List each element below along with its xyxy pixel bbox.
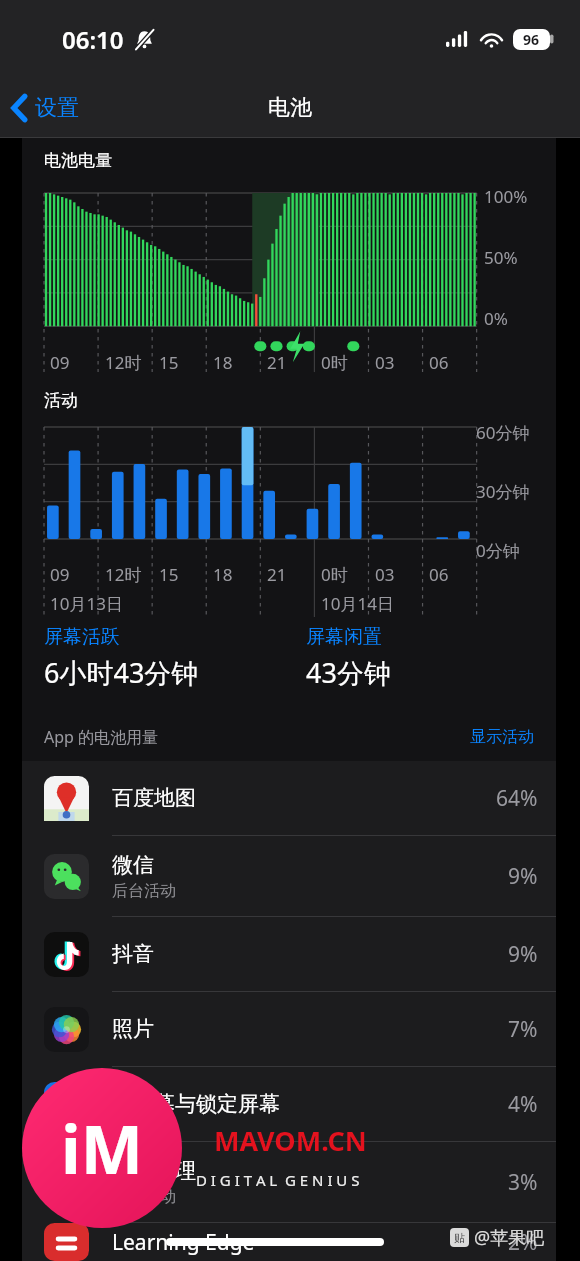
staticText: 06	[429, 351, 449, 374]
staticText: MAVOM.CN	[214, 1122, 367, 1159]
staticText: 15	[159, 563, 179, 586]
button[interactable]: 微信	[22, 836, 556, 916]
staticText: 2%	[508, 1228, 538, 1257]
staticText: 4%	[508, 1090, 538, 1119]
staticText: 0时	[321, 563, 348, 586]
staticText: 09	[50, 563, 70, 586]
staticText: Learning Edge	[112, 1228, 255, 1257]
staticText: 屏幕活跃	[44, 625, 120, 649]
staticText: 显示活动	[470, 727, 534, 747]
staticText: 0%	[484, 307, 508, 330]
staticText: 12时	[105, 563, 142, 586]
staticText: 30分钟	[476, 480, 530, 503]
staticText: @苹果吧	[474, 1225, 545, 1250]
staticText: 百度地图	[112, 785, 196, 811]
staticText: 64%	[496, 784, 538, 813]
staticText: 21	[267, 563, 287, 586]
staticText: 03	[375, 563, 395, 586]
staticText: 43分钟	[306, 654, 391, 691]
staticText: 后台活动	[112, 881, 176, 901]
staticText: 0分钟	[476, 539, 520, 562]
staticText: 屏幕闲置	[306, 625, 382, 649]
staticText: 设置	[35, 94, 79, 122]
staticText: 06:10	[62, 23, 124, 56]
staticText: 60分钟	[476, 421, 530, 444]
staticText: 3%	[508, 1168, 538, 1197]
button[interactable]: 照片	[22, 992, 556, 1066]
staticText: 电池	[268, 94, 312, 122]
staticText: 96	[523, 30, 540, 49]
staticText: 系统管理	[112, 1158, 196, 1184]
button[interactable]: 主屏幕与锁定屏幕	[22, 1067, 556, 1141]
staticText: 18	[213, 563, 233, 586]
staticText: 09	[50, 351, 70, 374]
staticText: App 的电池用量	[44, 726, 159, 748]
staticText: 后台活动	[112, 1187, 176, 1207]
staticText: 电池电量	[44, 150, 112, 171]
button[interactable]: Learning Edge	[22, 1223, 556, 1261]
staticText: 9%	[508, 940, 538, 969]
staticText: 主屏幕与锁定屏幕	[112, 1091, 280, 1117]
staticText: 10月14日	[321, 592, 394, 615]
staticText: 9%	[508, 862, 538, 891]
staticText: 活动	[44, 390, 78, 411]
staticText: 21	[267, 351, 287, 374]
button[interactable]: 抖音	[22, 917, 556, 991]
staticText: 06	[429, 563, 449, 586]
staticText: 50%	[484, 246, 518, 269]
staticText: iM	[61, 1103, 143, 1193]
staticText: 7%	[508, 1015, 538, 1044]
button[interactable]: 百度地图	[22, 761, 556, 835]
staticText: 微信	[112, 852, 154, 878]
staticText: 0时	[321, 351, 348, 374]
staticText: 18	[213, 351, 233, 374]
staticText: 照片	[112, 1016, 154, 1042]
staticText: 03	[375, 351, 395, 374]
staticText: 12时	[105, 351, 142, 374]
staticText: 10月13日	[50, 592, 123, 615]
button[interactable]: 显示活动	[466, 723, 538, 751]
staticText: 15	[159, 351, 179, 374]
button[interactable]: 系统管理	[22, 1142, 556, 1222]
staticText: 抖音	[112, 941, 154, 967]
staticText: 6小时43分钟	[44, 654, 199, 691]
button[interactable]: 设置	[0, 86, 93, 130]
staticText: D I G I T A L G E N I U S	[196, 1170, 360, 1190]
staticText: 100%	[484, 185, 528, 208]
staticText: 贴	[454, 1231, 465, 1245]
